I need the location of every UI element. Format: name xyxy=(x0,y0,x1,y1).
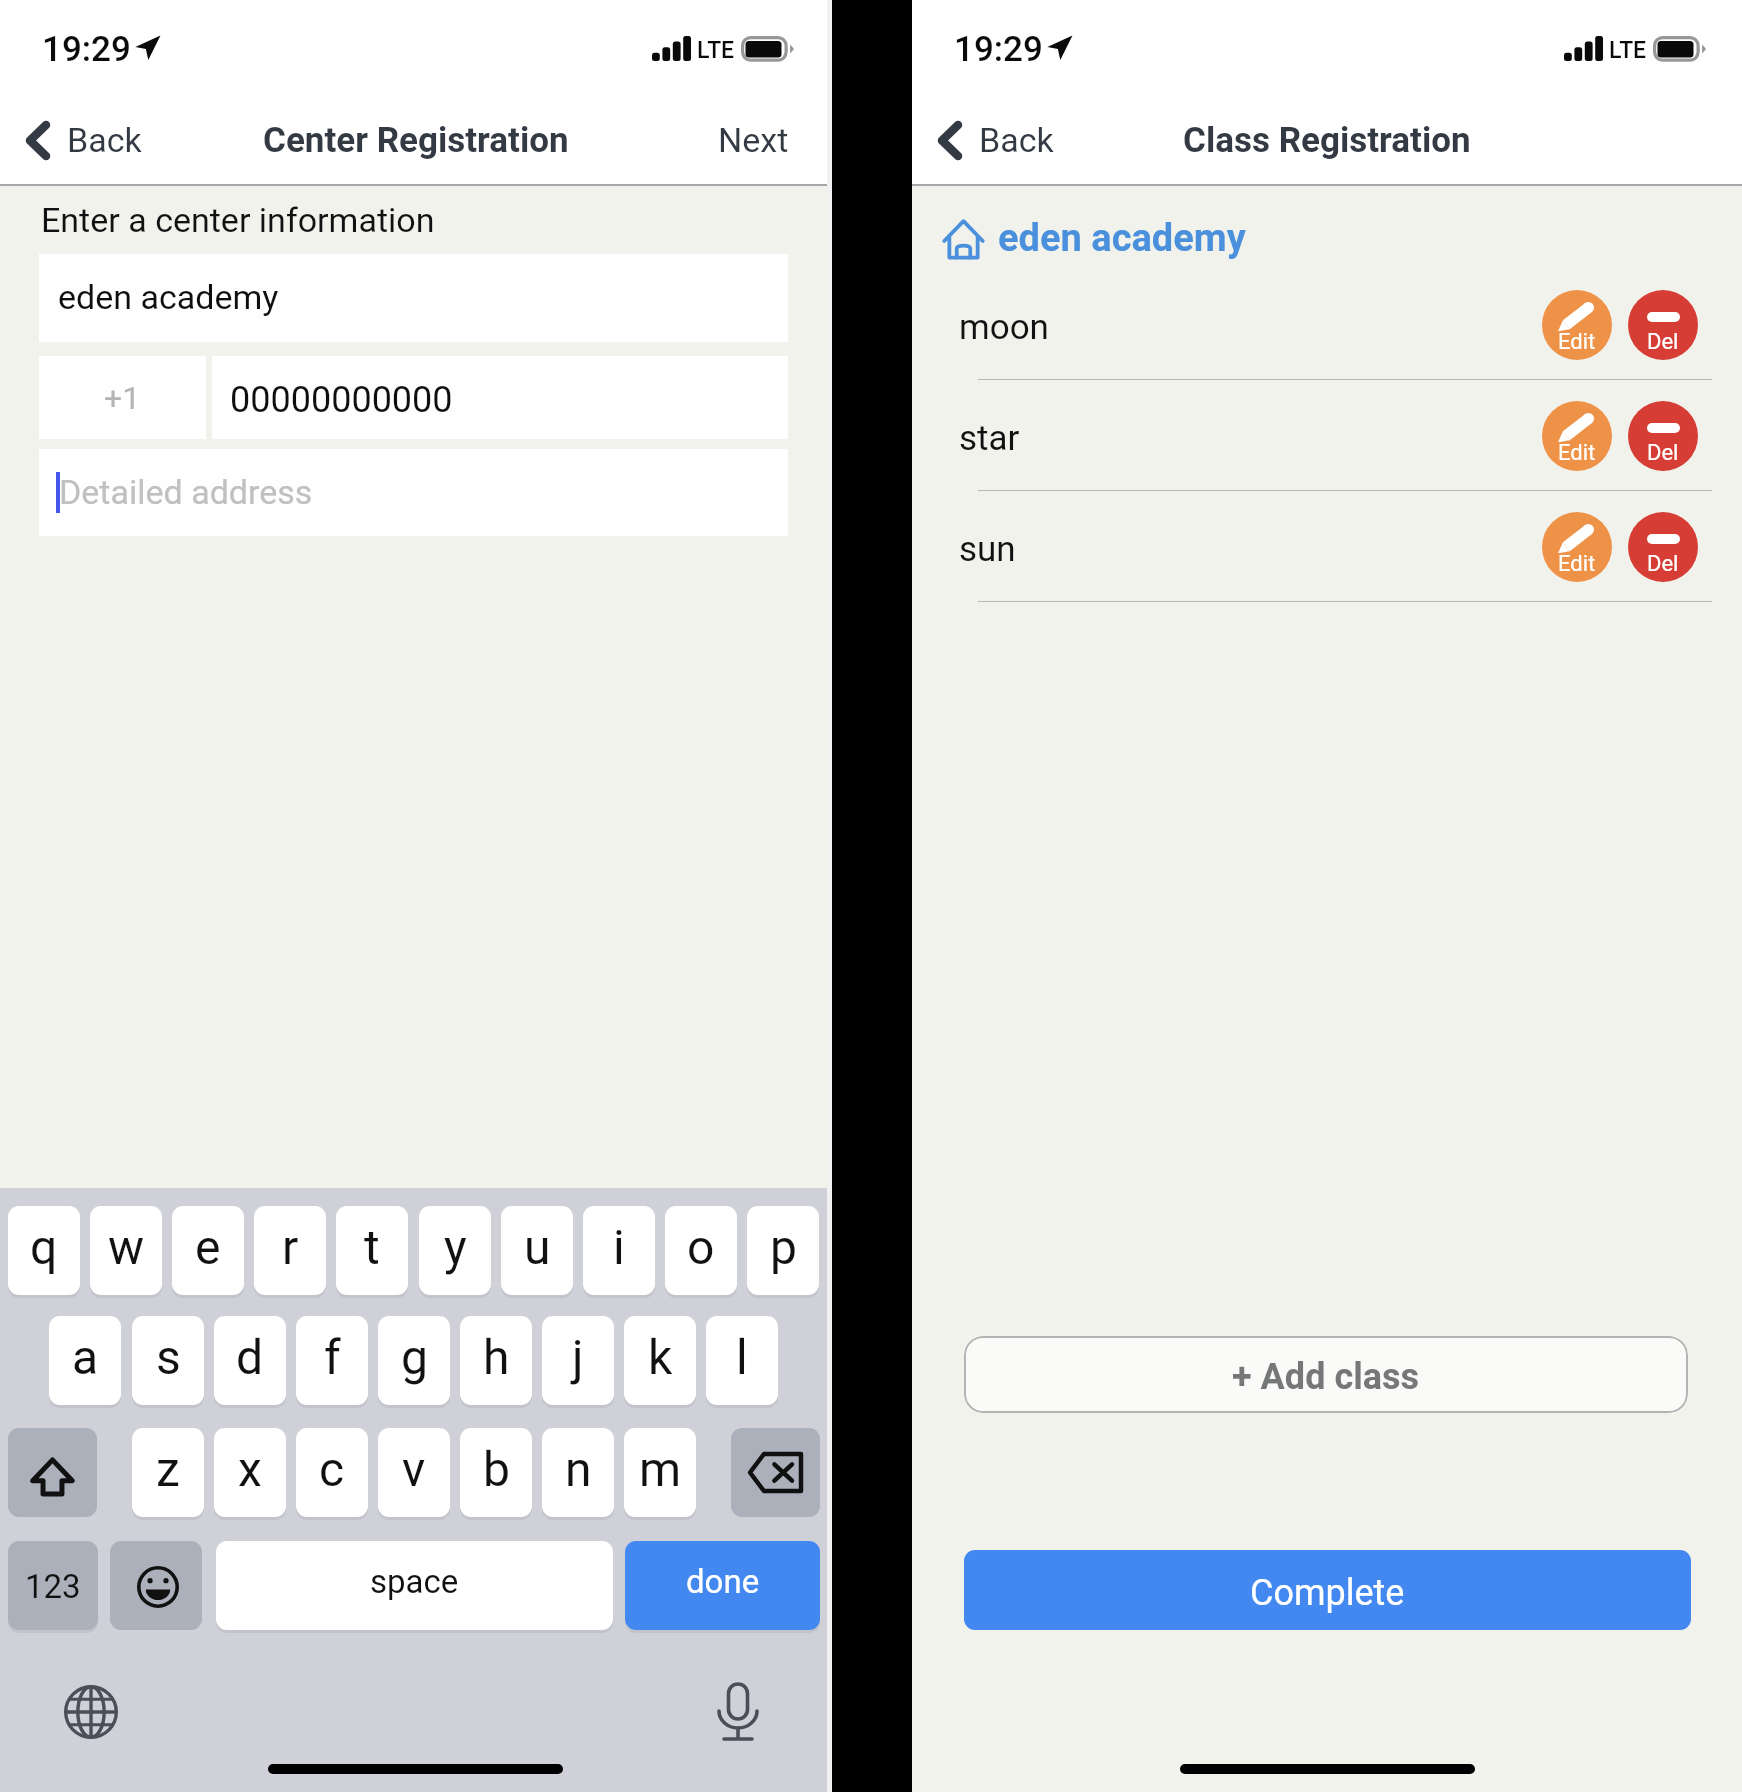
button[interactable]: Complete xyxy=(964,1550,1691,1630)
button[interactable]: Del xyxy=(1628,512,1698,582)
button[interactable]: h xyxy=(460,1316,532,1405)
staticText: Del xyxy=(1647,551,1679,577)
staticText: z xyxy=(156,1441,180,1497)
button[interactable]: y xyxy=(419,1206,491,1295)
button[interactable]: d xyxy=(214,1316,286,1405)
button[interactable]: v xyxy=(378,1428,450,1517)
staticText: Back xyxy=(979,120,1054,160)
staticText: w xyxy=(108,1219,145,1275)
button[interactable]: Edit xyxy=(1542,290,1612,360)
button[interactable]: f xyxy=(296,1316,368,1405)
staticText: eden academy xyxy=(998,216,1246,261)
button[interactable]: n xyxy=(542,1428,614,1517)
button[interactable]: l xyxy=(706,1316,778,1405)
staticText: Del xyxy=(1647,329,1679,355)
button[interactable]: + Add class xyxy=(964,1336,1688,1413)
button[interactable]: Next xyxy=(700,104,807,176)
staticText: g xyxy=(401,1329,428,1385)
staticText: star xyxy=(959,418,1020,459)
button[interactable]: space xyxy=(216,1541,613,1630)
staticText: s xyxy=(156,1329,181,1385)
button[interactable]: u xyxy=(501,1206,573,1295)
staticText: Center Registration xyxy=(263,120,569,161)
button[interactable]: b xyxy=(460,1428,532,1517)
staticText: Detailed address xyxy=(59,472,313,512)
staticText: Back xyxy=(67,120,142,160)
button[interactable]: z xyxy=(132,1428,204,1517)
button[interactable]: Dictation xyxy=(716,1682,760,1742)
button[interactable]: 123 xyxy=(8,1541,98,1630)
button[interactable]: Edit xyxy=(1542,512,1612,582)
staticText: m xyxy=(639,1441,682,1497)
button[interactable]: s xyxy=(132,1316,204,1405)
button[interactable]: k xyxy=(624,1316,696,1405)
staticText: u xyxy=(524,1219,551,1275)
staticText: e xyxy=(195,1219,221,1275)
button[interactable]: g xyxy=(378,1316,450,1405)
staticText: h xyxy=(483,1329,510,1385)
button[interactable]: Del xyxy=(1628,290,1698,360)
staticText: k xyxy=(648,1329,673,1385)
staticText: l xyxy=(736,1329,748,1385)
button[interactable]: 00000000000 xyxy=(212,356,788,439)
staticText: Edit xyxy=(1558,440,1596,466)
staticText: c xyxy=(319,1441,345,1497)
button[interactable]: i xyxy=(583,1206,655,1295)
staticText: moon xyxy=(959,307,1049,348)
staticText: Edit xyxy=(1558,329,1596,355)
button[interactable]: q xyxy=(8,1206,80,1295)
button[interactable]: Backspace xyxy=(731,1428,820,1517)
button[interactable]: r xyxy=(254,1206,326,1295)
staticText: 19:29 xyxy=(42,29,131,70)
staticText: d xyxy=(236,1329,264,1385)
staticText: + Add class xyxy=(1232,1356,1420,1398)
button[interactable]: Edit xyxy=(1542,401,1612,471)
button[interactable]: Back xyxy=(14,104,160,176)
button[interactable]: w xyxy=(90,1206,162,1295)
staticText: v xyxy=(402,1441,426,1497)
button[interactable]: Change keyboard xyxy=(64,1685,118,1739)
button[interactable]: x xyxy=(214,1428,286,1517)
staticText: space xyxy=(370,1562,459,1601)
staticText: t xyxy=(364,1219,380,1275)
button[interactable]: o xyxy=(665,1206,737,1295)
button[interactable]: e xyxy=(172,1206,244,1295)
staticText: LTE xyxy=(697,37,735,64)
button[interactable]: Emoji keyboard xyxy=(110,1541,202,1630)
staticText: q xyxy=(30,1219,58,1275)
staticText: eden academy xyxy=(58,277,279,317)
staticText: a xyxy=(72,1329,99,1385)
staticText: o xyxy=(687,1219,715,1275)
button[interactable]: a xyxy=(49,1316,121,1405)
button[interactable]: Detailed address xyxy=(39,449,788,536)
staticText: j xyxy=(572,1329,584,1385)
button[interactable]: eden academy xyxy=(39,254,788,342)
button[interactable]: +1 xyxy=(39,356,206,439)
button[interactable]: j xyxy=(542,1316,614,1405)
button[interactable]: done xyxy=(625,1541,820,1630)
staticText: Edit xyxy=(1558,551,1596,577)
staticText: i xyxy=(613,1219,625,1275)
staticText: Complete xyxy=(1250,1572,1405,1614)
staticText: 123 xyxy=(25,1567,81,1606)
button[interactable]: Shift xyxy=(8,1428,97,1517)
staticText: sun xyxy=(959,529,1016,570)
staticText: 00000000000 xyxy=(230,379,453,421)
staticText: Class Registration xyxy=(1183,120,1471,161)
staticText: Del xyxy=(1647,440,1679,466)
staticText: LTE xyxy=(1609,37,1647,64)
button[interactable]: eden academy xyxy=(936,210,1253,268)
button[interactable]: c xyxy=(296,1428,368,1517)
button[interactable]: t xyxy=(336,1206,408,1295)
staticText: done xyxy=(686,1562,760,1601)
staticText: n xyxy=(565,1441,592,1497)
button[interactable]: m xyxy=(624,1428,696,1517)
staticText: 19:29 xyxy=(954,29,1043,70)
button[interactable]: p xyxy=(747,1206,819,1295)
staticText: f xyxy=(324,1329,341,1385)
button[interactable]: Del xyxy=(1628,401,1698,471)
staticText: +1 xyxy=(104,379,141,417)
button[interactable]: Back xyxy=(926,104,1072,176)
staticText: r xyxy=(282,1219,299,1275)
staticText: Next xyxy=(718,120,789,160)
